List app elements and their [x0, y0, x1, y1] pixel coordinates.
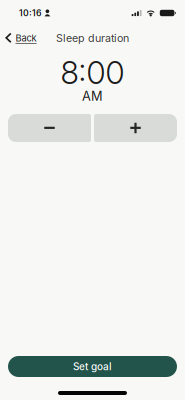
button[interactable]: Set goal	[8, 356, 177, 377]
staticText: AM	[82, 88, 103, 104]
button[interactable]: Decrease	[8, 114, 91, 142]
staticText: Back	[15, 32, 36, 44]
button[interactable]: Increase	[94, 114, 177, 142]
staticText: Set goal	[73, 360, 112, 373]
staticText: 8:00	[60, 53, 124, 91]
staticText: 10:16	[19, 8, 42, 18]
button[interactable]: Back	[0, 28, 41, 48]
staticText: Sleep duration	[56, 31, 129, 44]
